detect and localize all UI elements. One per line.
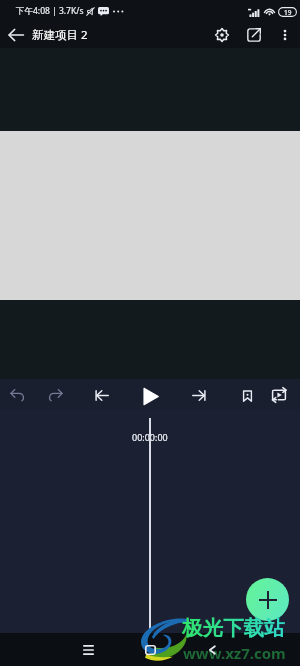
button[interactable]: Export bbox=[242, 23, 266, 47]
button[interactable]: Loop playback bbox=[266, 382, 292, 408]
staticText: 下午4:08 | 3.7K/s bbox=[16, 5, 84, 17]
staticText: www.xz7.com bbox=[183, 643, 286, 663]
staticText: 极光下载站 bbox=[182, 615, 285, 641]
button[interactable]: Skip to end bbox=[186, 382, 212, 408]
button[interactable]: Skip to start bbox=[88, 382, 114, 408]
button[interactable]: More options bbox=[273, 23, 297, 47]
button[interactable]: Recents bbox=[73, 635, 103, 665]
button[interactable]: Play bbox=[138, 383, 164, 409]
button[interactable]: Redo bbox=[42, 382, 68, 408]
staticText: 新建项目 2 bbox=[32, 27, 88, 43]
button[interactable]: Back bbox=[197, 635, 227, 665]
button[interactable]: Undo bbox=[5, 382, 31, 408]
button[interactable]: Home bbox=[135, 635, 165, 665]
button[interactable]: Bookmark bbox=[234, 382, 260, 408]
button[interactable]: Settings bbox=[210, 23, 234, 47]
staticText: 00:00:00 bbox=[132, 431, 168, 443]
button[interactable]: Add clip bbox=[246, 578, 289, 621]
button[interactable]: Back bbox=[4, 23, 28, 47]
staticText: 19 bbox=[284, 8, 292, 17]
